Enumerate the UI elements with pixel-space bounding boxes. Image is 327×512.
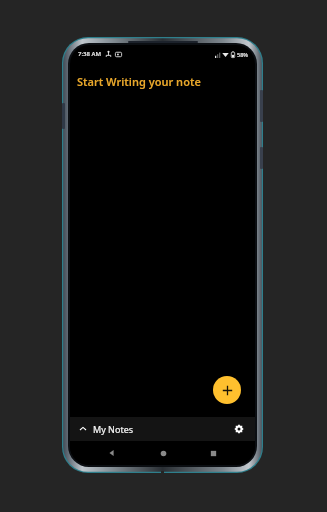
staticText: 7:38 AM <box>78 50 101 58</box>
staticText: My Notes <box>93 423 134 435</box>
button[interactable]: My Notes <box>70 417 255 441</box>
button[interactable]: Add note <box>213 376 241 404</box>
button[interactable]: Settings <box>232 422 246 436</box>
staticText: 58% <box>237 51 248 58</box>
button[interactable]: Back <box>103 444 121 462</box>
button[interactable]: Recent apps <box>204 444 222 462</box>
button[interactable]: Home <box>154 444 172 462</box>
staticText: Start Writing your note <box>77 74 201 89</box>
